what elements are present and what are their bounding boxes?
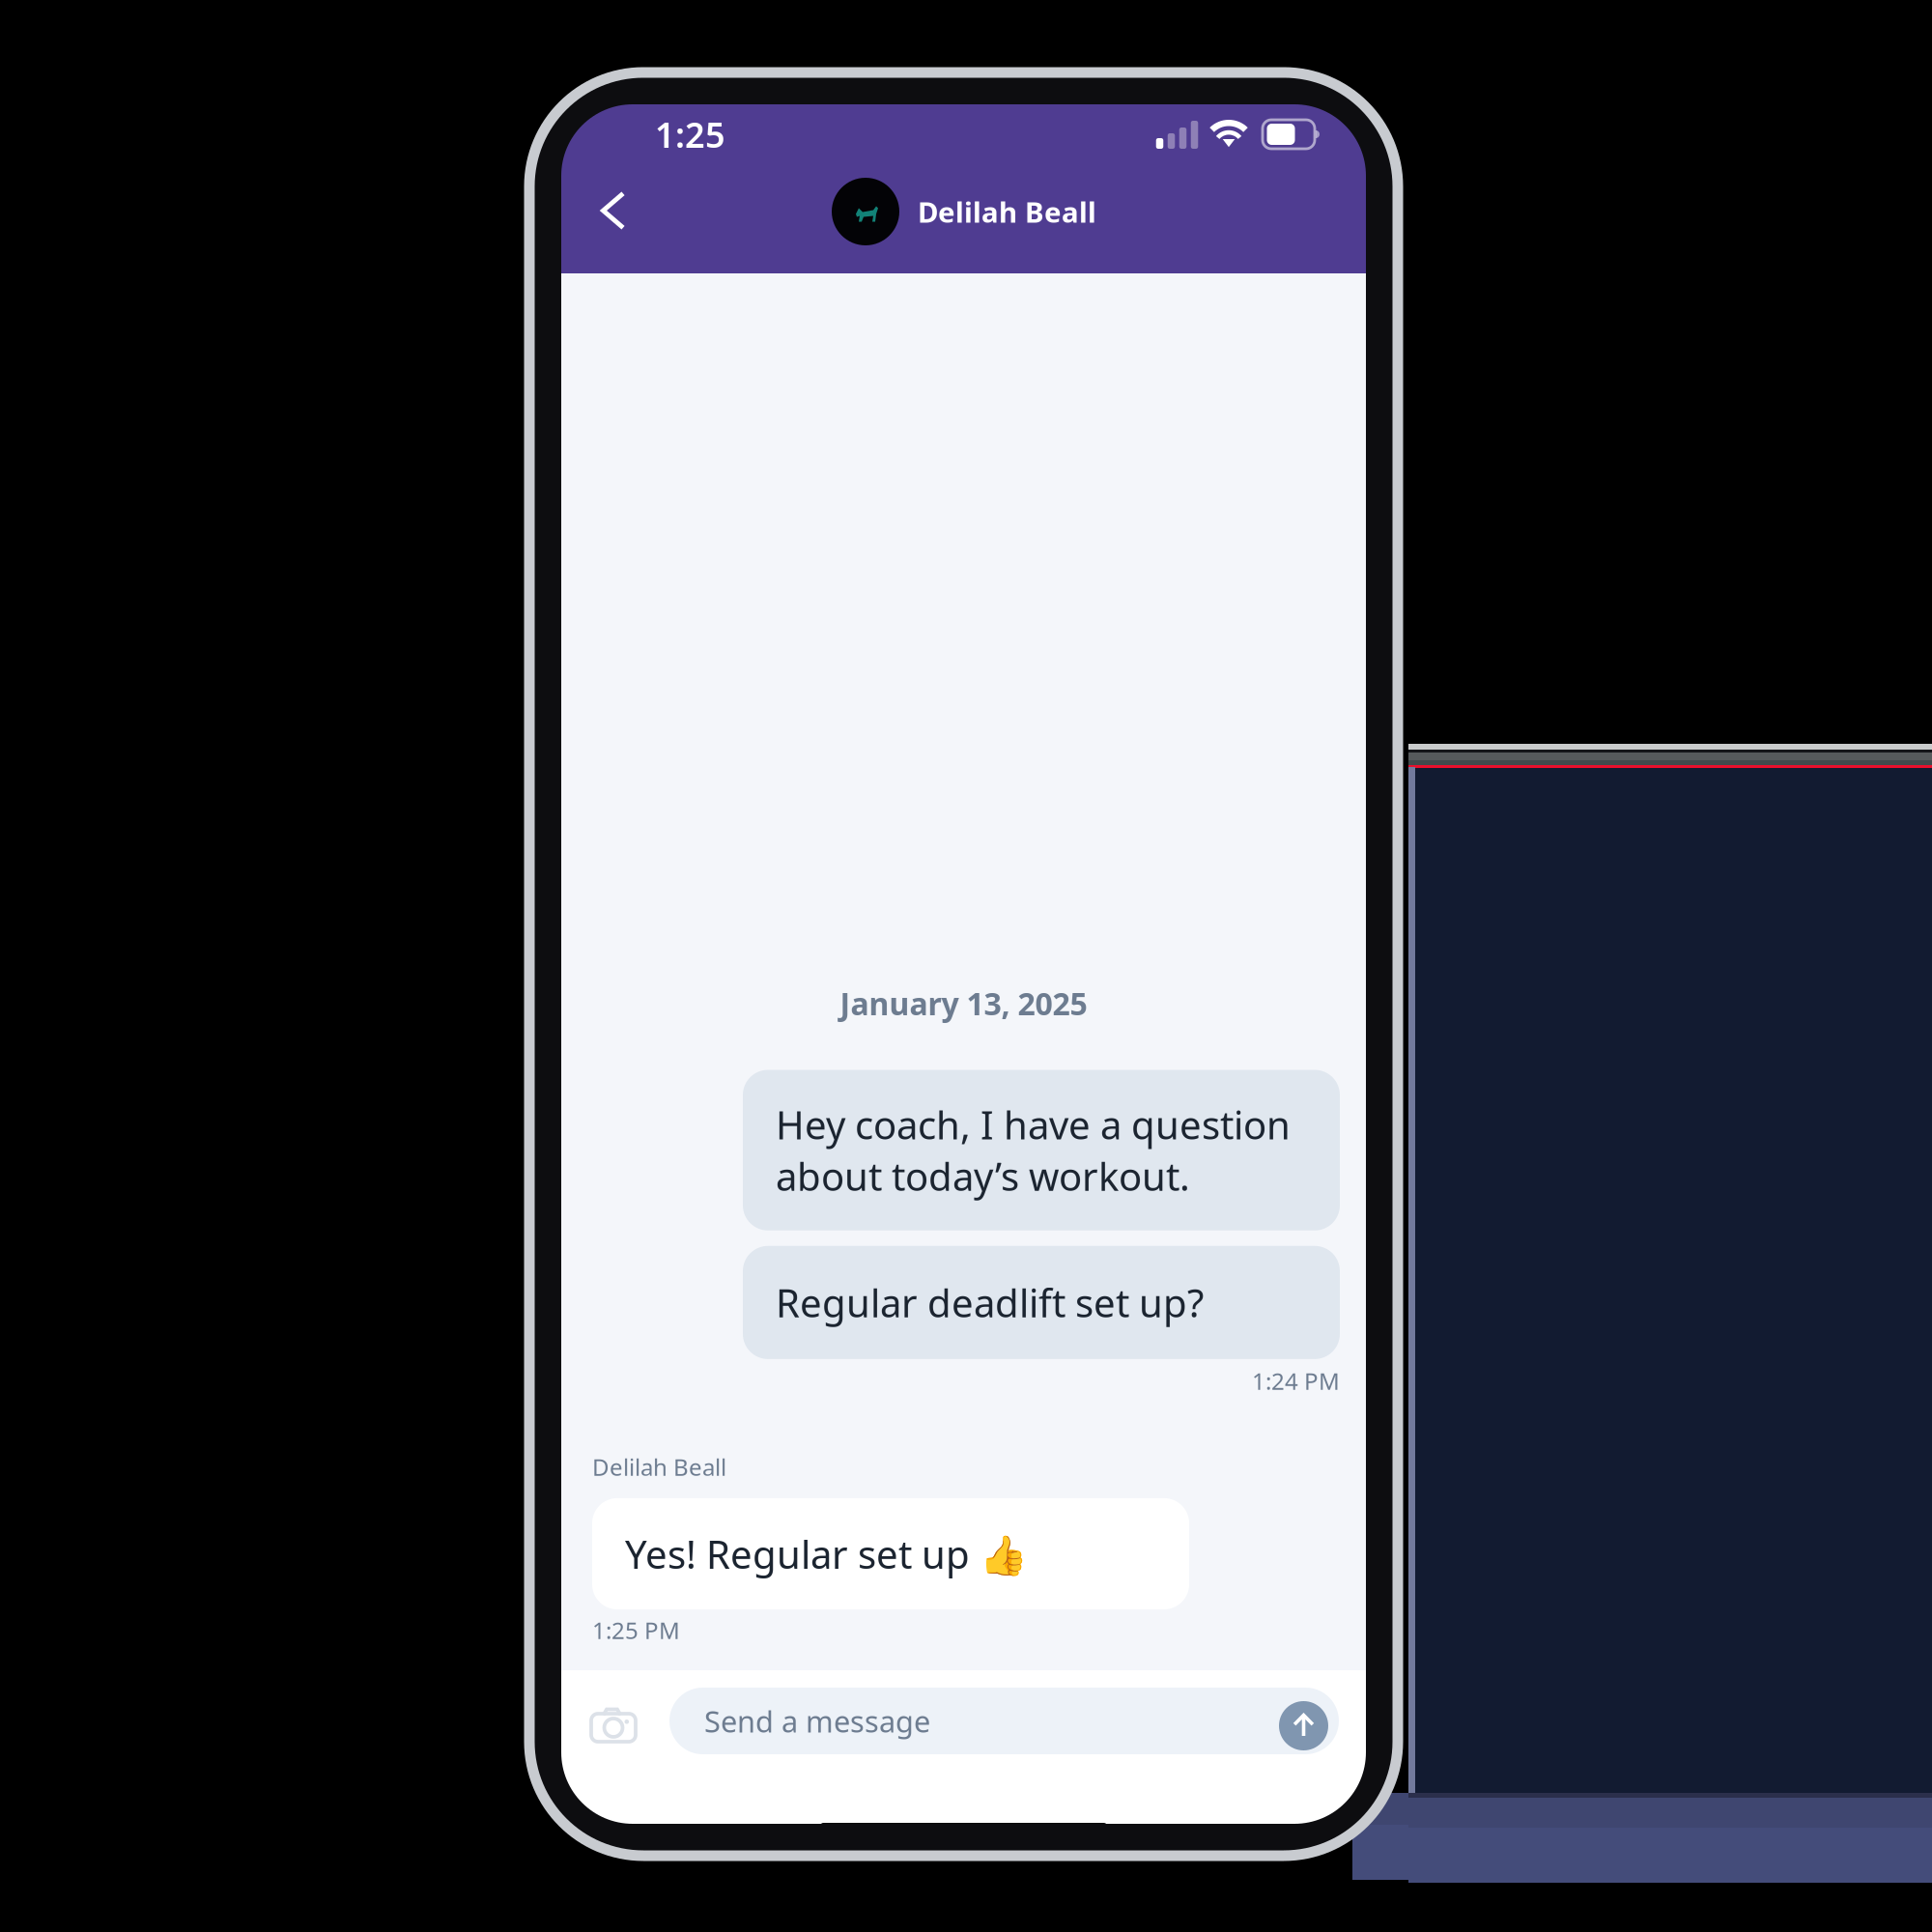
- staticText: 1:25: [655, 111, 725, 157]
- staticText: January 13, 2025: [840, 983, 1087, 1024]
- staticText: 1:24 PM: [1252, 1365, 1340, 1396]
- staticText: Hey coach, I have a question about today…: [776, 1099, 1291, 1201]
- button[interactable]: Back: [582, 175, 644, 246]
- staticText: Send a message: [704, 1701, 930, 1741]
- staticText: Regular deadlift set up?: [776, 1277, 1204, 1328]
- staticText: Delilah Beall: [918, 193, 1096, 230]
- button[interactable]: Send: [1279, 1696, 1328, 1746]
- button[interactable]: Add a photo: [590, 1688, 637, 1754]
- staticText: Delilah Beall: [592, 1451, 726, 1482]
- staticText: Yes! Regular set up 👍: [625, 1528, 1028, 1579]
- staticText: 1:25 PM: [592, 1615, 680, 1646]
